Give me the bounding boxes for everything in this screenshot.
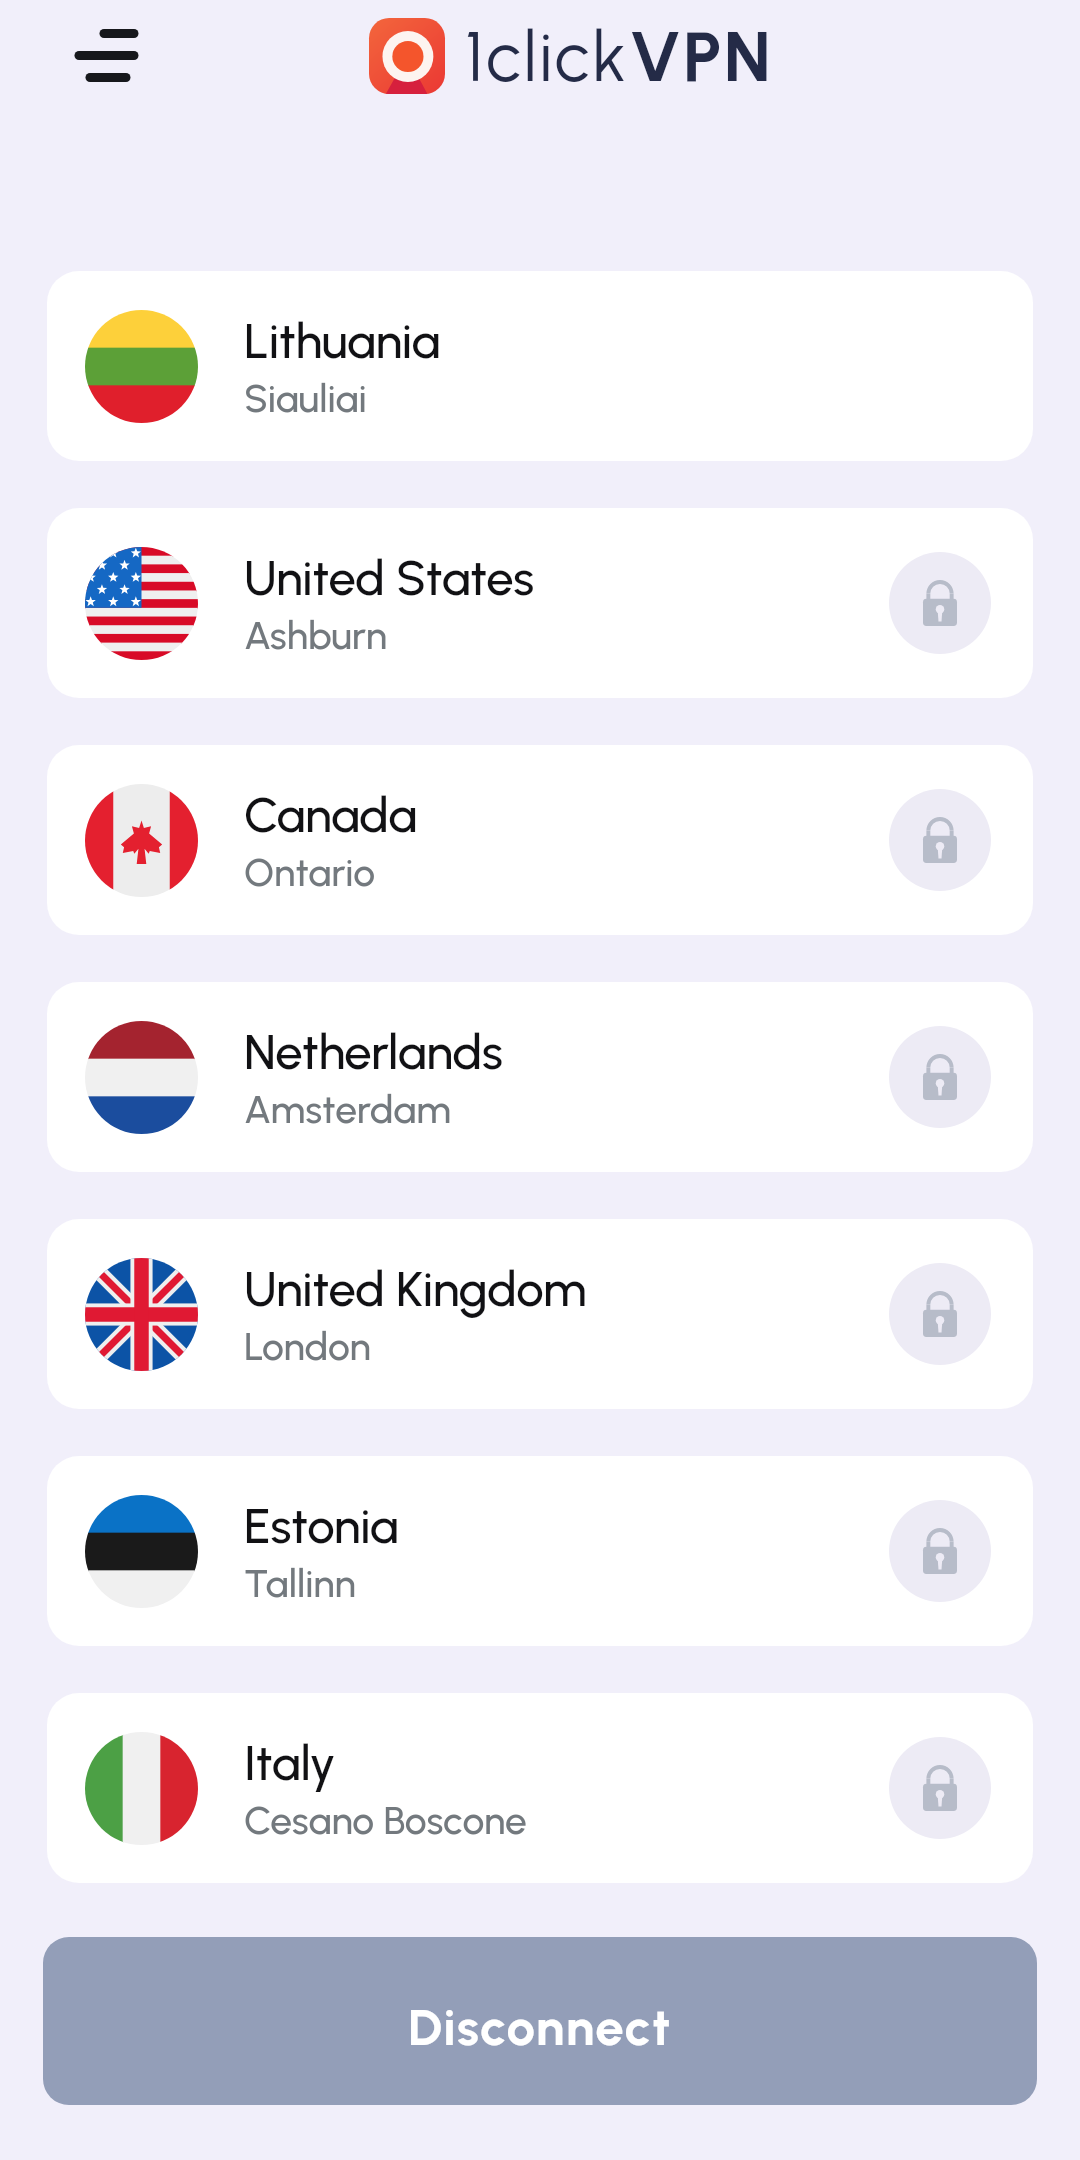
button[interactable]: Premium server locked xyxy=(889,1737,991,1839)
button[interactable]: Canada xyxy=(47,745,1033,935)
other: 1clickVPN logo xyxy=(369,18,445,94)
staticText: Tallinn xyxy=(244,1560,356,1607)
staticText: 1clickVPN xyxy=(465,14,774,98)
button[interactable]: Lithuania xyxy=(47,271,1033,461)
button[interactable]: Netherlands xyxy=(47,982,1033,1172)
staticText: Canada xyxy=(244,785,417,844)
button[interactable]: Estonia xyxy=(47,1456,1033,1646)
button[interactable]: United States xyxy=(47,508,1033,698)
button[interactable]: Premium server locked xyxy=(889,1500,991,1602)
staticText: Amsterdam xyxy=(244,1086,451,1133)
staticText: United States xyxy=(244,548,534,607)
staticText: Ontario xyxy=(244,849,376,896)
staticText: Lithuania xyxy=(244,311,440,370)
staticText: United Kingdom xyxy=(244,1259,587,1318)
button[interactable]: United Kingdom xyxy=(47,1219,1033,1409)
staticText: Italy xyxy=(244,1733,336,1792)
staticText: Siauliai xyxy=(244,375,367,422)
button[interactable]: Premium server locked xyxy=(889,552,991,654)
staticText: Cesano Boscone xyxy=(244,1797,527,1844)
button[interactable]: Italy xyxy=(47,1693,1033,1883)
button[interactable]: Premium server locked xyxy=(889,789,991,891)
button[interactable]: Premium server locked xyxy=(889,1263,991,1365)
button[interactable]: Disconnect xyxy=(43,1937,1037,2105)
staticText: Ashburn xyxy=(244,612,388,659)
staticText: Estonia xyxy=(244,1496,399,1555)
staticText: Disconnect xyxy=(408,1997,672,2058)
button[interactable]: Premium server locked xyxy=(889,1026,991,1128)
staticText: London xyxy=(244,1323,371,1370)
button[interactable]: Open navigation menu xyxy=(58,12,158,98)
staticText: Netherlands xyxy=(244,1022,503,1081)
